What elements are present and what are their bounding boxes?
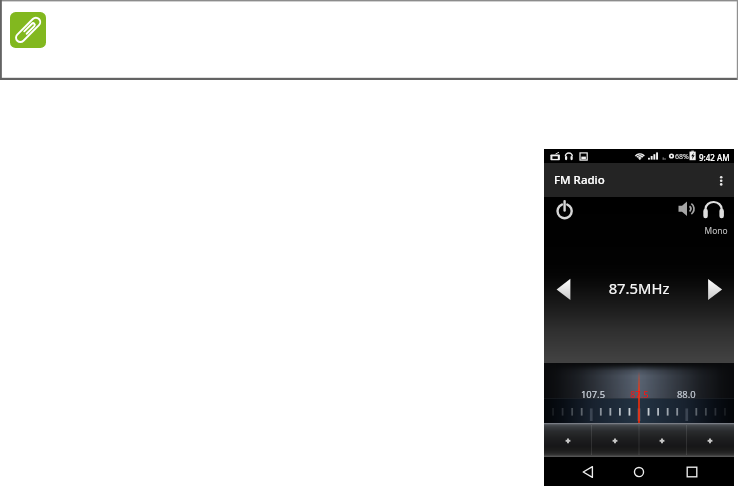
staticText: 87.5MHz xyxy=(544,278,734,298)
button[interactable]: Next station xyxy=(704,275,726,304)
staticText: FM Radio xyxy=(554,172,605,188)
staticText: 107.5 xyxy=(581,388,606,401)
staticText: 9:42 AM xyxy=(699,152,730,163)
staticText: 87.5 xyxy=(630,388,649,401)
button[interactable]: Preset 1 xyxy=(544,423,591,457)
button[interactable]: Preset 3 xyxy=(638,423,686,457)
button[interactable]: Preset 4 xyxy=(686,423,734,457)
button[interactable]: Preset 2 xyxy=(591,423,638,457)
button[interactable]: Recent apps xyxy=(674,457,710,486)
button[interactable]: Home xyxy=(621,457,657,486)
button[interactable]: Headphones, Mono output xyxy=(701,198,727,218)
button[interactable]: More options xyxy=(709,163,734,197)
button[interactable]: Previous station xyxy=(552,275,574,304)
button[interactable]: Speaker xyxy=(676,198,696,218)
staticText: Mono xyxy=(700,225,732,236)
staticText: 88.0 xyxy=(677,388,696,401)
staticText: 68% xyxy=(675,152,689,162)
button[interactable]: Back xyxy=(570,457,606,486)
button[interactable]: Power xyxy=(553,198,577,222)
button[interactable]: Attachment xyxy=(10,12,46,48)
